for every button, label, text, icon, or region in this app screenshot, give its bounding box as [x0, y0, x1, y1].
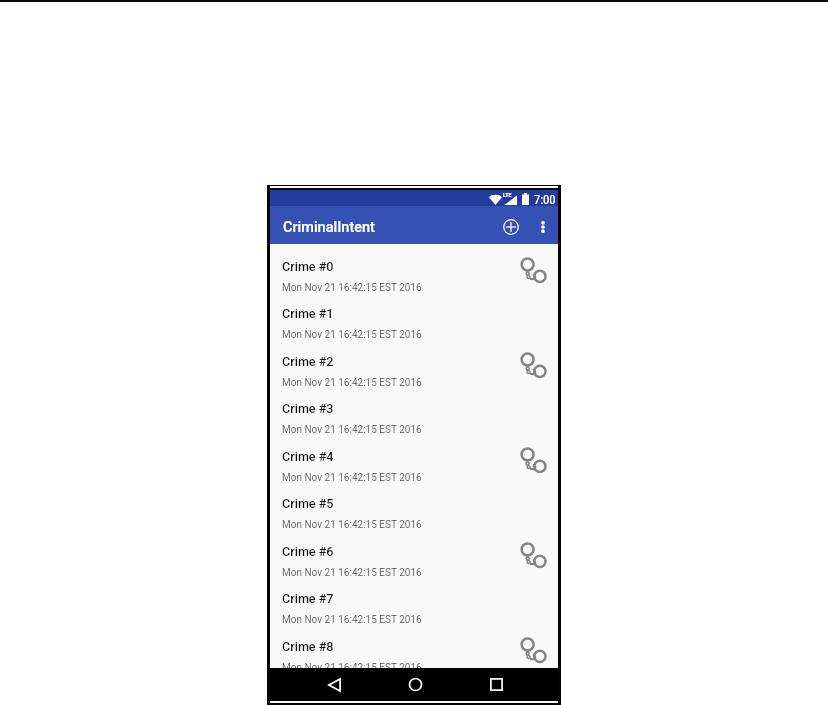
staticText: Mon Nov 21 16:42:15 EST 2016: [282, 567, 422, 576]
staticText: Crime #3: [282, 401, 334, 416]
button[interactable]: Crime #2: [270, 339, 558, 386]
button[interactable]: Crime #0: [270, 244, 558, 291]
staticText: LTE: [503, 192, 512, 198]
button[interactable]: Crime #3: [270, 386, 558, 433]
button[interactable]: Crime #7: [270, 576, 558, 623]
staticText: Crime #5: [282, 496, 334, 511]
button[interactable]: Recent apps: [478, 668, 514, 701]
staticText: CriminalIntent: [283, 219, 375, 236]
button[interactable]: More options: [538, 210, 558, 238]
staticText: Mon Nov 21 16:42:15 EST 2016: [282, 329, 422, 338]
staticText: Crime #4: [282, 449, 334, 464]
staticText: Mon Nov 21 16:42:15 EST 2016: [282, 662, 422, 671]
staticText: Mon Nov 21 16:42:15 EST 2016: [282, 472, 422, 481]
staticText: Mon Nov 21 16:42:15 EST 2016: [282, 377, 422, 386]
button[interactable]: Crime #9: [270, 671, 558, 705]
staticText: Crime #9: [282, 686, 334, 701]
staticText: Crime #1: [282, 306, 334, 321]
staticText: Crime #6: [282, 544, 334, 559]
staticText: Crime #2: [282, 354, 334, 369]
button[interactable]: Crime #5: [270, 481, 558, 528]
button[interactable]: Back: [316, 668, 352, 701]
button[interactable]: Crime #4: [270, 434, 558, 481]
staticText: Crime #8: [282, 639, 334, 654]
staticText: Mon Nov 21 16:42:15 EST 2016: [282, 614, 422, 623]
button[interactable]: Crime #6: [270, 529, 558, 576]
button[interactable]: Crime #8: [270, 624, 558, 671]
staticText: 7:00: [534, 192, 556, 207]
staticText: Crime #0: [282, 259, 334, 274]
staticText: Mon Nov 21 16:42:15 EST 2016: [282, 424, 422, 433]
button[interactable]: Crime #1: [270, 291, 558, 338]
staticText: Mon Nov 21 16:42:15 EST 2016: [282, 519, 422, 528]
button[interactable]: Home: [397, 668, 433, 701]
staticText: Mon Nov 21 16:42:15 EST 2016: [282, 282, 422, 291]
staticText: Crime #7: [282, 591, 334, 606]
button[interactable]: New crime: [498, 214, 524, 240]
